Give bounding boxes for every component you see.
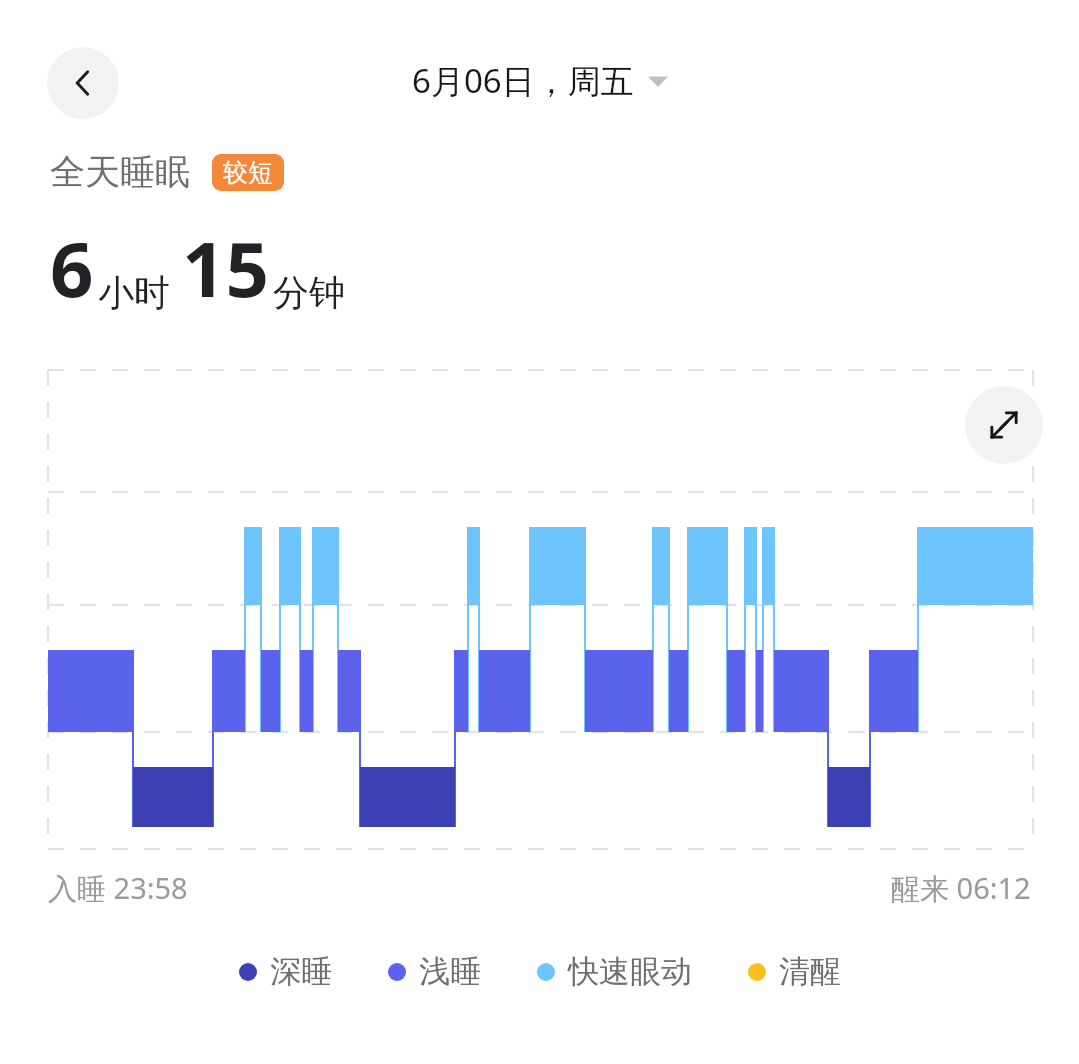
button[interactable]: 清醒 xyxy=(748,952,841,991)
staticText: 醒来 06:12 xyxy=(891,868,1031,908)
staticText: 快速眼动 xyxy=(568,952,692,991)
staticText: 清醒 xyxy=(779,952,841,991)
staticText: 较短 xyxy=(223,157,273,188)
button[interactable]: 快速眼动 xyxy=(537,952,692,991)
staticText: 深睡 xyxy=(270,952,332,991)
staticText: 6月06日，周五 xyxy=(412,58,634,103)
staticText: 浅睡 xyxy=(419,952,481,991)
button[interactable]: Expand chart xyxy=(965,386,1043,464)
staticText: 小时 xyxy=(98,270,170,315)
staticText: 入睡 23:58 xyxy=(48,868,188,908)
staticText: 分钟 xyxy=(273,270,345,315)
button[interactable]: Back xyxy=(47,47,119,119)
staticText: 15 xyxy=(182,216,269,320)
staticText: 6 xyxy=(50,216,94,320)
button[interactable]: 深睡 xyxy=(239,952,332,991)
staticText: 全天睡眠 xyxy=(50,150,190,194)
button[interactable]: 浅睡 xyxy=(388,952,481,991)
button[interactable]: 6月06日，周五 xyxy=(412,58,668,103)
